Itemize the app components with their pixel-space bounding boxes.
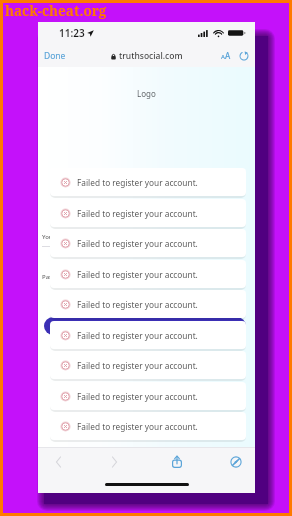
button[interactable]: Text size [219, 48, 233, 63]
button[interactable]: Done [41, 46, 69, 66]
button[interactable]: truthsocial.com [105, 47, 189, 65]
staticText: 11:23 [59, 26, 85, 40]
button[interactable] [44, 317, 246, 335]
button[interactable]: Failed to register your account. [50, 351, 246, 379]
button[interactable]: Bookmarks [217, 448, 255, 475]
button[interactable]: Share [157, 448, 197, 475]
button[interactable]: Failed to register your account. [50, 321, 246, 349]
staticText: Password [42, 273, 70, 281]
button[interactable]: Back [38, 448, 78, 475]
button[interactable]: Failed to register your account. [50, 168, 246, 196]
staticText: Logo [137, 88, 156, 99]
button[interactable]: Failed to register your account. [50, 412, 246, 440]
staticText: Failed to register your account. [77, 391, 198, 402]
button[interactable]: Failed to register your account. [50, 290, 246, 318]
staticText: Done [44, 50, 66, 62]
staticText: Failed to register your account. [77, 421, 198, 432]
staticText: truthsocial.com [119, 50, 183, 62]
staticText: Failed to register your account. [77, 269, 198, 280]
button[interactable]: Failed to register your account. [50, 229, 246, 257]
button[interactable]: Failed to register your account. [50, 382, 246, 410]
staticText: A [221, 53, 225, 61]
staticText: Failed to register your account. [77, 360, 198, 371]
staticText: hack-cheat.org [5, 2, 107, 20]
button[interactable]: Forward [94, 448, 134, 475]
button[interactable]: Failed to register your account. [50, 199, 246, 227]
button[interactable]: Failed to register your account. [50, 260, 246, 288]
button[interactable]: Reload [238, 50, 250, 62]
staticText: Your email [42, 233, 73, 241]
staticText: Failed to register your account. [77, 208, 198, 219]
staticText: Failed to register your account. [77, 238, 198, 249]
staticText: Failed to register your account. [77, 299, 198, 310]
staticText: Failed to register your account. [77, 330, 198, 341]
staticText: A [225, 50, 231, 61]
staticText: Failed to register your account. [77, 177, 198, 188]
